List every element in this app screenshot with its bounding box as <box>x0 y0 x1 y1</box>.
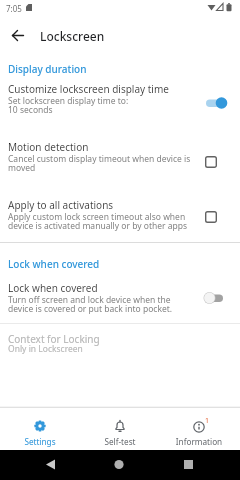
button[interactable]: Apply to all activations <box>0 194 240 244</box>
button[interactable]: Lock when covered <box>0 277 240 320</box>
staticText: Display duration <box>8 62 87 76</box>
staticText: Customize lockscreen display time <box>8 82 169 96</box>
staticText: Information <box>166 436 232 447</box>
staticText: Self-test <box>87 436 153 447</box>
button[interactable]: Customize lockscreen display time <box>0 78 240 133</box>
button[interactable] <box>0 16 40 56</box>
staticText: Motion detection <box>8 140 89 154</box>
staticText: Set lockscreen display time to: 10 secon… <box>8 95 129 116</box>
staticText: Apply custom lock screen timeout also wh… <box>8 211 188 232</box>
staticText: Settings <box>7 436 73 447</box>
staticText: Context for Locking <box>8 332 100 346</box>
staticText: Lock when covered <box>8 281 98 295</box>
staticText: 7:05 <box>6 3 22 14</box>
button[interactable]: Self-test <box>87 408 153 450</box>
button[interactable]: 1 <box>166 408 232 450</box>
staticText: Lock when covered <box>8 257 100 271</box>
staticText: 1 <box>205 416 210 426</box>
button[interactable]: Settings <box>7 408 73 450</box>
staticText: Only in Lockscreen <box>8 343 83 355</box>
staticText: Apply to all activations <box>8 198 114 212</box>
button[interactable]: Motion detection <box>0 136 240 192</box>
staticText: Cancel custom display timeout when devic… <box>8 153 191 174</box>
staticText: Turn off screen and lock device when the… <box>8 294 173 315</box>
staticText: Lockscreen <box>40 28 105 44</box>
